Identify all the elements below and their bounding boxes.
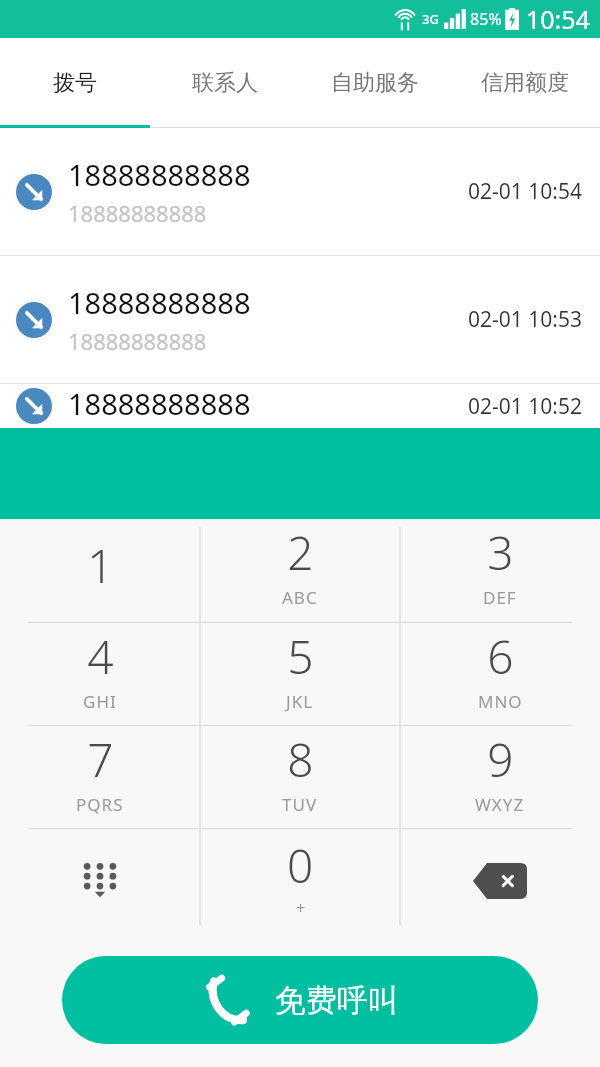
staticText: + [296,897,306,919]
staticText: GHI [83,690,117,713]
staticText: DEF [483,586,517,609]
staticText: 18888888888 [68,384,251,423]
staticText: 9 [487,728,514,791]
staticText: 拨号 [53,69,97,97]
staticText: 0 [287,834,314,897]
button[interactable]: 免费呼叫 [62,956,538,1044]
button[interactable]: 7 [0,726,200,829]
staticText: 自助服务 [331,69,419,97]
staticText: MNO [478,690,523,713]
staticText: 6 [487,625,514,688]
staticText: 02-01 10:53 [468,305,582,334]
staticText: 3 [487,521,514,584]
button[interactable]: 2 [200,519,400,623]
button[interactable]: 9 [400,726,600,829]
staticText: 信用额度 [481,69,569,97]
button[interactable]: 4 [0,623,200,726]
button[interactable]: 1 [0,519,200,623]
staticText: PQRS [76,793,124,816]
staticText: 18888888888 [68,155,251,194]
button[interactable]: 拨号 [0,38,150,128]
other: Incoming call [16,302,52,338]
staticText: TUV [282,793,318,816]
staticText: 3G [422,10,439,28]
button[interactable]: 8 [200,726,400,829]
staticText: 4 [87,625,114,688]
staticText: 02-01 10:54 [468,177,582,206]
staticText: 18888888888 [68,326,207,356]
staticText: 2 [287,521,314,584]
staticText: 18888888888 [68,198,207,228]
button[interactable]: 信用额度 [450,38,600,128]
button[interactable]: Backspace [400,829,600,932]
staticText: 02-01 10:52 [468,392,582,421]
button[interactable]: 3 [400,519,600,623]
button[interactable]: Incoming call [0,256,600,383]
staticText: 5 [287,625,314,688]
other: Incoming call [16,388,52,424]
staticText: 8 [287,728,314,791]
button[interactable]: 0 [200,829,400,932]
staticText: ABC [282,586,318,609]
staticText: 85% [470,8,502,30]
button[interactable]: Hide keypad [0,829,200,932]
button[interactable]: 自助服务 [300,38,450,128]
button[interactable]: 5 [200,623,400,726]
other: Incoming call [16,174,52,210]
staticText: 7 [87,728,114,791]
staticText: 18888888888 [68,283,251,322]
button[interactable]: Incoming call [0,384,600,428]
staticText: WXYZ [475,793,525,816]
button[interactable]: 联系人 [150,38,300,128]
button[interactable]: 6 [400,623,600,726]
button[interactable]: Incoming call [0,128,600,255]
staticText: 1 [87,534,114,597]
staticText: 10:54 [526,2,590,36]
staticText: 免费呼叫 [275,981,399,1020]
staticText: JKL [286,690,314,713]
staticText: 联系人 [192,69,258,97]
